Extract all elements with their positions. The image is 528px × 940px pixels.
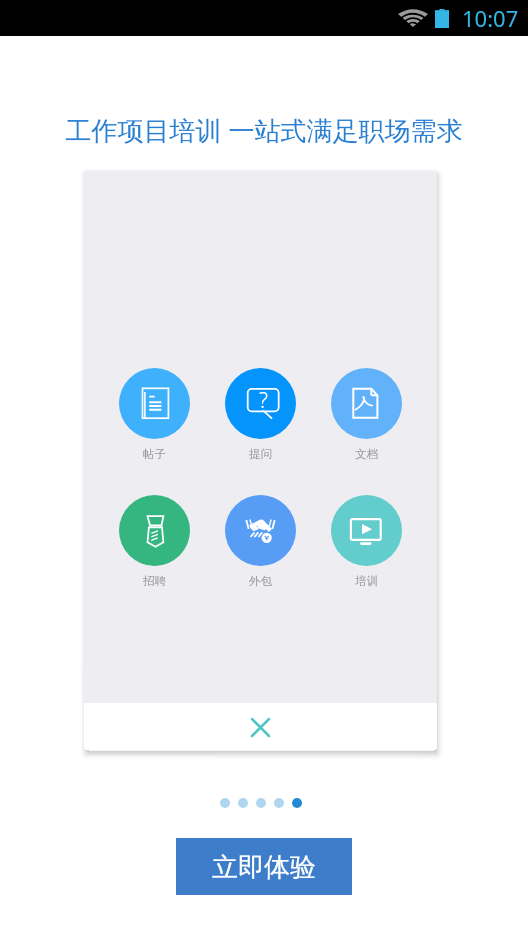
button[interactable]: Page 1 [220,798,230,808]
button[interactable]: Page 4 [274,798,284,808]
staticText: 工作项目培训 一站式满足职场需求 [0,112,528,148]
button[interactable]: 培训 [331,495,402,588]
staticText: 帖子 [143,447,166,461]
button[interactable]: Page 2 [238,798,248,808]
button[interactable]: ? [225,368,296,461]
staticText: 培训 [355,574,378,588]
button[interactable]: 立即体验 [176,838,352,895]
staticText: 立即体验 [212,851,316,884]
button[interactable]: Close [84,703,437,750]
staticText: 外包 [249,574,272,588]
staticText: 招聘 [143,574,166,588]
button[interactable]: 招聘 [119,495,190,588]
staticText: ? [259,386,268,415]
button[interactable]: 外包 [225,495,296,588]
staticText: 文档 [355,447,378,461]
button[interactable]: 文档 [331,368,402,461]
staticText: 10:07 [462,3,519,33]
button[interactable]: 帖子 [119,368,190,461]
button[interactable]: Page 5 [292,798,302,808]
button[interactable]: Page 3 [256,798,266,808]
staticText: 提问 [249,447,272,461]
